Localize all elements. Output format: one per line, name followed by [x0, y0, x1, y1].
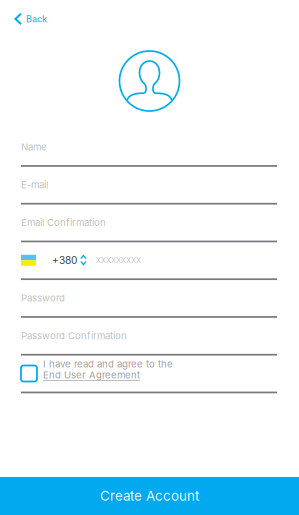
- staticText: I have read and agree to the: [43, 358, 173, 370]
- staticText: Create Account: [100, 488, 199, 504]
- button[interactable]: E-mail: [21, 167, 277, 205]
- button[interactable]: Agree to End User Agreement: [21, 365, 37, 381]
- button[interactable]: Password: [21, 280, 277, 318]
- button[interactable]: Password Confirmation: [21, 318, 277, 356]
- staticText: Email Confirmation: [21, 217, 106, 228]
- button[interactable]: Back: [0, 0, 299, 34]
- button[interactable]: Create Account: [0, 477, 299, 515]
- button[interactable]: Add profile photo: [119, 51, 179, 111]
- staticText: +380: [52, 254, 77, 266]
- staticText: E-mail: [21, 179, 48, 191]
- staticText: Password: [21, 292, 65, 304]
- button[interactable]: End User Agreement: [43, 369, 140, 381]
- staticText: Password Confirmation: [21, 330, 127, 342]
- staticText: Name: [21, 141, 47, 153]
- staticText: XXXXXXXXX: [96, 256, 141, 265]
- button[interactable]: +380: [21, 242, 277, 280]
- button[interactable]: Email Confirmation: [21, 204, 277, 242]
- staticText: Back: [26, 13, 47, 24]
- button[interactable]: Name: [21, 129, 277, 167]
- staticText: End User Agreement: [43, 369, 140, 381]
